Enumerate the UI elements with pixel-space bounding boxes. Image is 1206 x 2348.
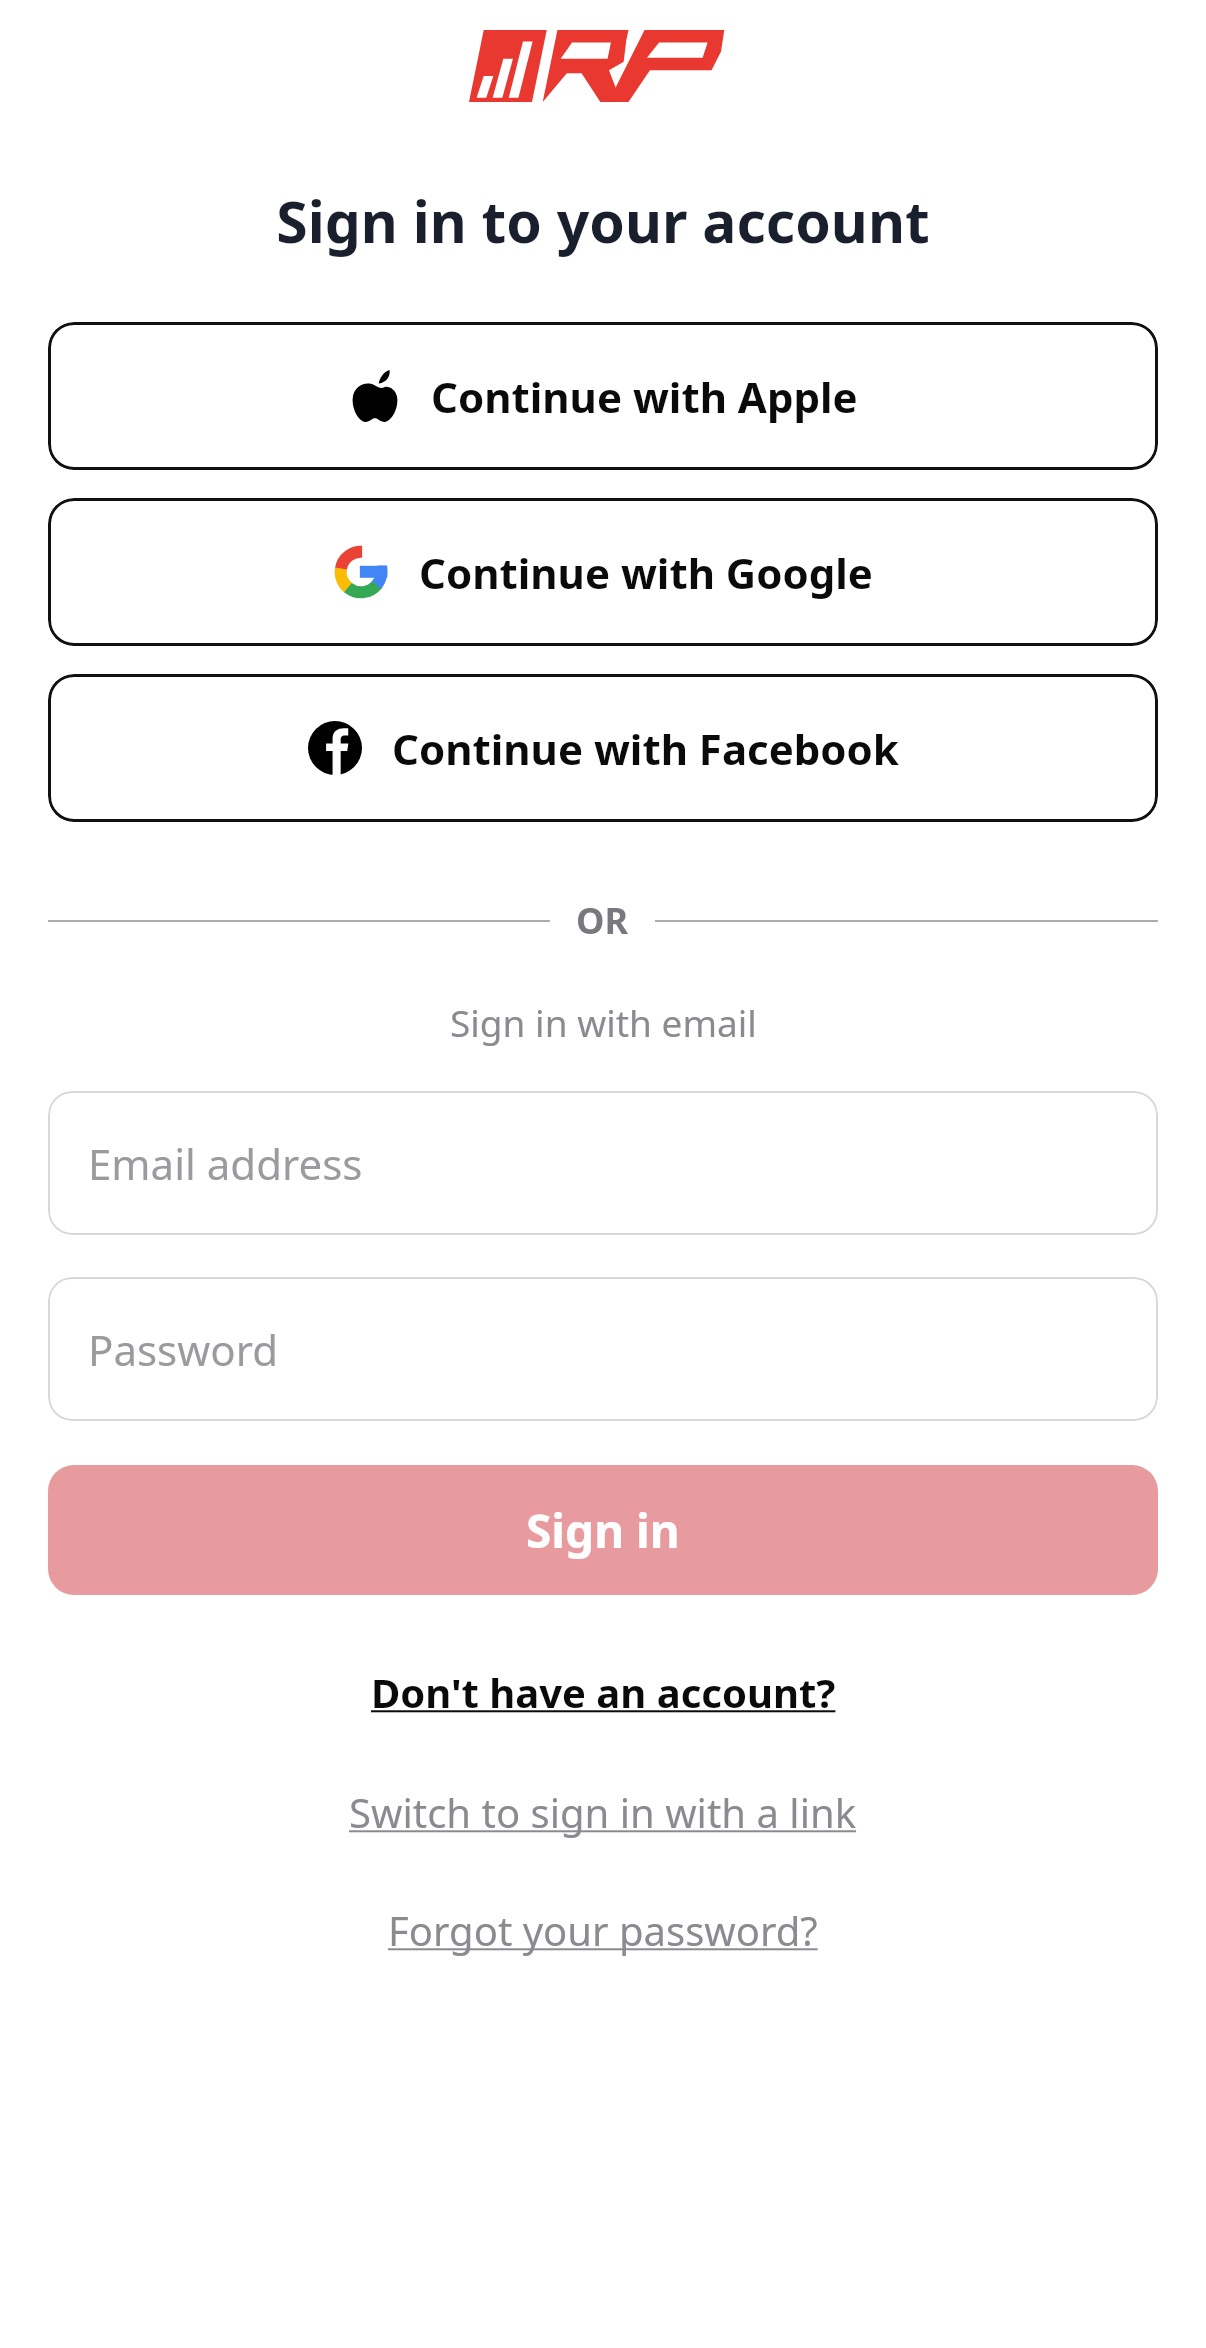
- staticText: Email address: [88, 1135, 363, 1192]
- button[interactable]: Switch to sign in with a link: [343, 1781, 863, 1843]
- staticText: Continue with Facebook: [392, 720, 899, 777]
- staticText: Continue with Google: [419, 544, 873, 601]
- button[interactable]: Continue with Facebook: [48, 674, 1158, 822]
- button[interactable]: Don't have an account?: [365, 1661, 842, 1723]
- button[interactable]: Forgot your password?: [382, 1899, 824, 1961]
- staticText: Forgot your password?: [388, 1903, 818, 1957]
- button[interactable]: Continue with Google: [48, 498, 1158, 646]
- staticText: Continue with Apple: [431, 368, 858, 425]
- staticText: OR: [576, 896, 629, 945]
- button[interactable]: Password: [48, 1277, 1158, 1421]
- staticText: Switch to sign in with a link: [349, 1785, 857, 1839]
- button[interactable]: Email address: [48, 1091, 1158, 1235]
- staticText: Password: [88, 1321, 278, 1378]
- staticText: Sign in: [526, 1499, 680, 1562]
- staticText: Sign in with email: [450, 997, 757, 1047]
- staticText: Sign in to your account: [276, 182, 930, 260]
- staticText: Don't have an account?: [371, 1665, 836, 1719]
- button[interactable]: Sign in: [48, 1465, 1158, 1595]
- button[interactable]: Continue with Apple: [48, 322, 1158, 470]
